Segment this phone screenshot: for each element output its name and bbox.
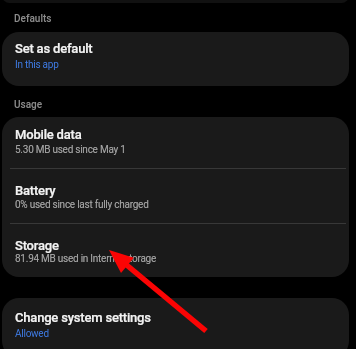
button[interactable]: Change system settings <box>2 298 349 349</box>
staticText: Usage <box>14 99 43 111</box>
staticText: 0% used since last fully charged <box>15 199 149 211</box>
staticText: 81.94 MB used in Internal storage <box>15 253 156 265</box>
staticText: Change system settings <box>15 310 151 325</box>
button[interactable]: Mobile data <box>2 117 349 169</box>
staticText: Set as default <box>15 41 93 56</box>
staticText: Mobile data <box>15 127 82 142</box>
button[interactable]: Set as default <box>2 32 349 86</box>
staticText: 5.30 MB used since May 1 <box>15 144 126 156</box>
staticText: Defaults <box>14 13 52 25</box>
staticText: In this app <box>15 59 59 71</box>
button[interactable]: Battery <box>2 169 349 224</box>
staticText: Battery <box>15 183 56 198</box>
staticText: Allowed <box>15 328 49 340</box>
staticText: Storage <box>15 238 59 253</box>
button[interactable]: Storage <box>2 224 349 277</box>
